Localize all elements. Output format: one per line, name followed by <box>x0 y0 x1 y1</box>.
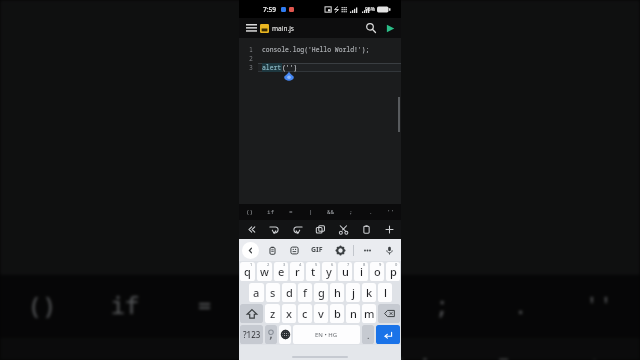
button[interactable]: . <box>362 325 374 344</box>
button[interactable]: | <box>245 275 324 338</box>
button[interactable]: . <box>361 204 381 220</box>
staticText: p <box>390 264 397 279</box>
button[interactable]: v <box>314 304 328 323</box>
staticText: v <box>318 306 324 321</box>
button[interactable]: if <box>83 275 166 338</box>
button[interactable]: x <box>282 304 296 323</box>
button[interactable]: Collapse <box>239 220 263 239</box>
button[interactable]: i <box>354 262 368 281</box>
button[interactable]: Comma and emoji <box>265 325 277 344</box>
staticText: 8 <box>363 262 366 267</box>
staticText: r <box>295 264 300 279</box>
button[interactable]: l <box>378 283 392 302</box>
button[interactable]: n <box>346 304 360 323</box>
staticText: m <box>364 306 375 321</box>
staticText: n <box>350 306 357 321</box>
staticText: t <box>311 264 316 279</box>
button[interactable]: y <box>322 262 336 281</box>
button[interactable]: k <box>362 283 376 302</box>
button[interactable]: r <box>290 262 304 281</box>
button[interactable]: a <box>249 283 264 302</box>
staticText: () <box>246 208 254 216</box>
button[interactable]: Enter <box>376 325 400 344</box>
button[interactable]: GIF <box>308 243 326 257</box>
button[interactable]: Settings <box>332 242 348 258</box>
button[interactable]: () <box>0 275 83 338</box>
staticText: b <box>334 306 341 321</box>
button[interactable]: m <box>362 304 376 323</box>
button[interactable]: b <box>330 304 344 323</box>
button[interactable]: u <box>338 262 352 281</box>
button[interactable]: Run <box>383 21 397 35</box>
button[interactable]: Duplicate <box>309 220 332 239</box>
button[interactable]: Add <box>378 220 401 239</box>
button[interactable]: c <box>298 304 312 323</box>
button[interactable]: ; <box>341 204 361 220</box>
button[interactable]: Duplicate <box>277 338 367 360</box>
button[interactable]: Shift <box>240 304 263 323</box>
button[interactable]: = <box>166 275 245 338</box>
button[interactable]: w <box>257 262 272 281</box>
button[interactable]: () <box>239 204 260 220</box>
button[interactable]: s <box>266 283 280 302</box>
staticText: . <box>514 291 529 322</box>
button[interactable]: Search <box>363 20 379 36</box>
button[interactable]: Cut <box>332 220 355 239</box>
button[interactable]: && <box>321 204 341 220</box>
staticText: 7 <box>347 262 350 267</box>
button[interactable]: o <box>370 262 384 281</box>
staticText: k <box>366 285 373 300</box>
staticText: '' <box>387 208 395 216</box>
staticText: 3 <box>283 262 286 267</box>
button[interactable]: Open navigation menu <box>242 19 260 37</box>
staticText: main.js <box>272 24 294 33</box>
staticText: && <box>348 291 379 322</box>
staticText: x <box>286 306 292 321</box>
staticText: y <box>326 264 332 279</box>
button[interactable]: p <box>386 262 400 281</box>
staticText: 1 <box>250 262 253 267</box>
button[interactable]: f <box>298 283 312 302</box>
button[interactable]: '' <box>381 204 401 220</box>
button[interactable]: g <box>314 283 328 302</box>
button[interactable]: z <box>265 304 280 323</box>
button[interactable]: Stickers <box>286 242 302 258</box>
staticText: '' <box>585 291 616 322</box>
staticText: ('') <box>282 63 298 72</box>
staticText: | <box>277 291 292 322</box>
button[interactable]: Undo <box>263 220 286 239</box>
button[interactable]: d <box>282 283 296 302</box>
button[interactable]: Cut <box>367 338 458 360</box>
staticText: GIF <box>311 245 323 255</box>
button[interactable]: Back <box>242 242 259 259</box>
staticText: ; <box>349 208 353 216</box>
button[interactable]: Redo <box>286 220 309 239</box>
button[interactable]: q <box>240 262 255 281</box>
button[interactable]: t <box>306 262 320 281</box>
button[interactable]: Change language <box>279 325 291 344</box>
button[interactable]: | <box>301 204 321 220</box>
button[interactable]: Voice input <box>381 242 397 258</box>
button[interactable]: && <box>324 275 403 338</box>
button[interactable]: Backspace <box>378 304 400 323</box>
button[interactable]: ?123 <box>240 325 263 344</box>
button[interactable]: Paste <box>355 220 378 239</box>
button[interactable]: Clipboard <box>264 242 280 258</box>
button[interactable]: h <box>330 283 344 302</box>
button[interactable]: More options <box>359 242 375 258</box>
button[interactable]: e <box>274 262 288 281</box>
button[interactable]: EN • HG <box>293 325 360 344</box>
button[interactable]: ; <box>403 275 482 338</box>
button[interactable]: Redo <box>186 338 276 360</box>
staticText: u <box>342 264 349 279</box>
button[interactable]: = <box>281 204 301 220</box>
button[interactable]: j <box>346 283 360 302</box>
button[interactable]: if <box>260 204 281 220</box>
staticText: q <box>244 264 251 279</box>
